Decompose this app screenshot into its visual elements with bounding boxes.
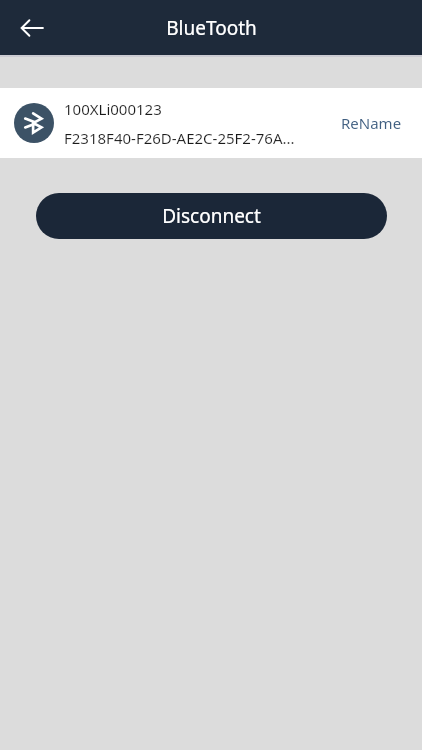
staticText: 100XLi000123 (64, 99, 162, 119)
staticText: ReName (341, 113, 402, 133)
button[interactable]: Back (10, 6, 54, 50)
button[interactable]: ReName (335, 105, 408, 141)
staticText: BlueTooth (166, 15, 257, 41)
button[interactable]: 100XLi000123 (0, 88, 422, 158)
button[interactable]: Disconnect (36, 193, 387, 239)
staticText: F2318F40-F26D-AE2C-25F2-76A... (64, 128, 295, 148)
staticText: Disconnect (162, 203, 261, 229)
